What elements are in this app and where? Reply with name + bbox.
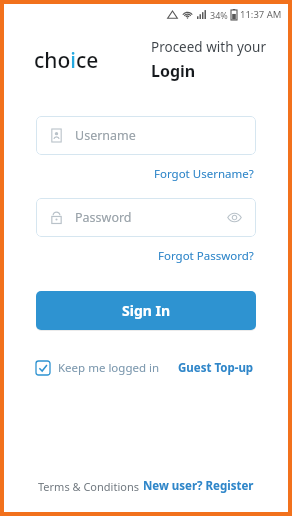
staticText: choice [34, 46, 99, 75]
staticText: 34% [210, 9, 228, 21]
other: Show password [227, 210, 242, 225]
button[interactable]: Forgot Password? [156, 246, 256, 266]
button[interactable]: New user? Register [141, 474, 256, 498]
staticText: 11:37 AM [240, 8, 282, 21]
button[interactable]: Keep me logged in [36, 357, 160, 379]
button[interactable]: Terms & Conditions [36, 475, 141, 498]
button[interactable]: Sign In [36, 291, 256, 330]
button[interactable]: Username [36, 116, 256, 155]
staticText: Proceed with your [151, 38, 266, 56]
staticText: Login [151, 60, 196, 82]
button[interactable]: Guest Top-up [176, 357, 256, 379]
staticText: Password [75, 209, 132, 226]
staticText: Sign In [122, 301, 171, 320]
button[interactable]: Forgot Username? [152, 164, 256, 184]
button[interactable]: Password [36, 198, 256, 237]
staticText: Keep me logged in [58, 360, 160, 376]
staticText: Username [75, 127, 136, 144]
